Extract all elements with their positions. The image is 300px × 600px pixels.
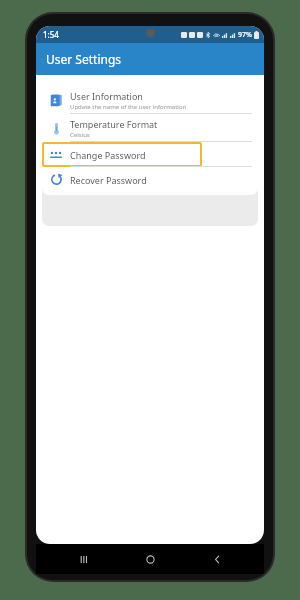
button[interactable]: Recover Password <box>42 167 258 192</box>
button[interactable]: Recent apps <box>63 546 103 572</box>
staticText: Update the name of the user information <box>70 103 187 111</box>
staticText: User Settings <box>46 51 122 67</box>
button[interactable]: Back <box>197 546 237 572</box>
staticText: Celsius <box>70 131 90 139</box>
staticText: User Information <box>70 90 143 102</box>
button[interactable]: Temperature Format <box>42 114 258 142</box>
button[interactable]: Change Password <box>42 142 202 167</box>
button[interactable]: Home <box>130 546 170 572</box>
staticText: Recover Password <box>70 174 147 186</box>
staticText: 97% <box>238 30 252 40</box>
staticText: Temperature Format <box>70 118 158 130</box>
staticText: Change Password <box>70 149 146 161</box>
staticText: 1:54 <box>43 29 59 40</box>
button[interactable]: User Settings <box>36 43 264 75</box>
button[interactable]: User Information <box>42 86 258 114</box>
